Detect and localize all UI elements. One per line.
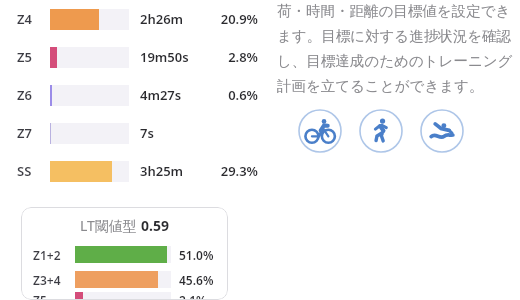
button[interactable]: Z3+4	[21, 267, 228, 292]
button[interactable]: Z6	[0, 76, 270, 114]
staticText: Z1+2	[33, 247, 61, 263]
button[interactable]: LT閾値型	[21, 207, 228, 300]
button[interactable]: SS	[0, 152, 270, 190]
staticText: 2.1%	[179, 292, 207, 300]
staticText: Z5	[17, 48, 32, 66]
staticText: 2.8%	[200, 48, 258, 66]
staticText: Z4	[17, 10, 32, 28]
staticText: 荷・時間・距離の目標値を設定できます。目標に対する進捗状況を確認し、目標達成のた…	[277, 2, 518, 95]
staticText: SS	[17, 162, 32, 180]
staticText: 20.9%	[200, 10, 258, 28]
button[interactable]: Z1+2	[21, 242, 228, 267]
staticText: 29.3%	[200, 162, 258, 180]
staticText: LT閾値型	[80, 216, 141, 235]
staticText: 4m27s	[140, 86, 182, 104]
staticText: 19m50s	[140, 48, 189, 66]
staticText: 0.6%	[200, 86, 258, 104]
button[interactable]: Z5	[0, 38, 270, 76]
staticText: 2h26m	[140, 10, 184, 28]
staticText: Z6	[17, 86, 32, 104]
button[interactable]: Z7	[0, 114, 270, 152]
staticText: 0.59	[141, 216, 169, 235]
staticText: 51.0%	[179, 247, 214, 263]
staticText: 3h25m	[140, 162, 184, 180]
button[interactable]: Z4	[0, 0, 270, 38]
staticText: Z5	[33, 292, 47, 300]
button[interactable]: Swimming	[420, 109, 464, 153]
button[interactable]: Running	[359, 109, 403, 153]
staticText: Z3+4	[33, 272, 61, 288]
staticText: 45.6%	[179, 272, 214, 288]
staticText: 7s	[140, 124, 154, 142]
button[interactable]: Z5	[21, 292, 228, 300]
button[interactable]: Cycling	[298, 109, 342, 153]
staticText: Z7	[17, 124, 32, 142]
